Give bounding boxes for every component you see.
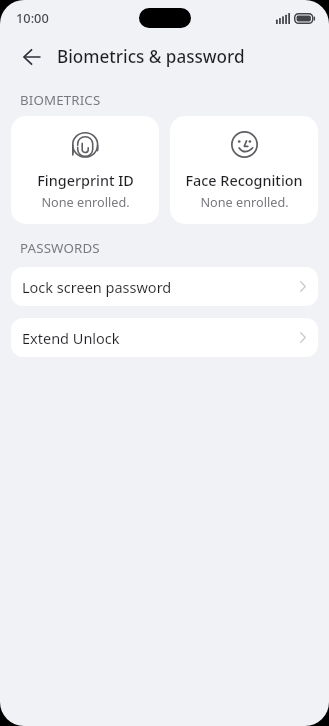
- staticText: None enrolled.: [41, 193, 130, 210]
- staticText: 10:00: [16, 9, 49, 26]
- button[interactable]: Extend Unlock: [11, 318, 318, 357]
- staticText: Lock screen password: [22, 277, 300, 297]
- staticText: Biometrics & password: [57, 45, 245, 68]
- button[interactable]: Lock screen password: [11, 267, 318, 306]
- staticText: BIOMETRICS: [20, 91, 101, 109]
- staticText: Extend Unlock: [22, 328, 300, 348]
- staticText: None enrolled.: [200, 193, 289, 210]
- staticText: Fingerprint ID: [37, 171, 134, 191]
- button[interactable]: Back: [11, 36, 53, 78]
- button[interactable]: Face Recognition: [170, 116, 318, 224]
- staticText: Face Recognition: [185, 171, 303, 191]
- staticText: PASSWORDS: [20, 239, 100, 257]
- button[interactable]: Fingerprint ID: [11, 116, 159, 224]
